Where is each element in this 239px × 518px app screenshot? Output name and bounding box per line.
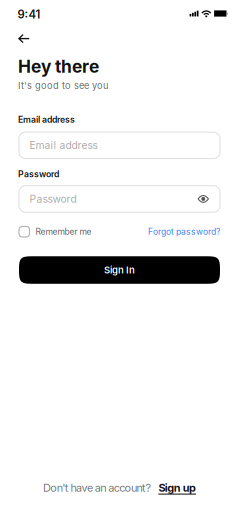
staticText: Don't have an account? <box>43 481 151 494</box>
staticText: Password <box>18 169 59 179</box>
button[interactable]: Forgot password? <box>148 227 220 237</box>
button[interactable] <box>197 194 220 203</box>
staticText: Remember me <box>35 227 91 237</box>
button[interactable]: Sign up <box>151 481 196 494</box>
staticText: Forgot password? <box>148 227 220 237</box>
staticText: Hey there <box>18 56 99 77</box>
staticText: 9:41 <box>17 8 40 21</box>
staticText: Sign up <box>158 481 196 494</box>
staticText: It's good to see you <box>18 80 108 91</box>
button[interactable]: Remember me <box>19 226 91 237</box>
staticText: Password <box>29 193 76 205</box>
staticText: Sign In <box>104 264 135 276</box>
button[interactable] <box>0 27 30 43</box>
button[interactable]: Sign In <box>19 256 220 284</box>
staticText: Email address <box>29 139 97 152</box>
staticText: Email address <box>18 114 75 125</box>
